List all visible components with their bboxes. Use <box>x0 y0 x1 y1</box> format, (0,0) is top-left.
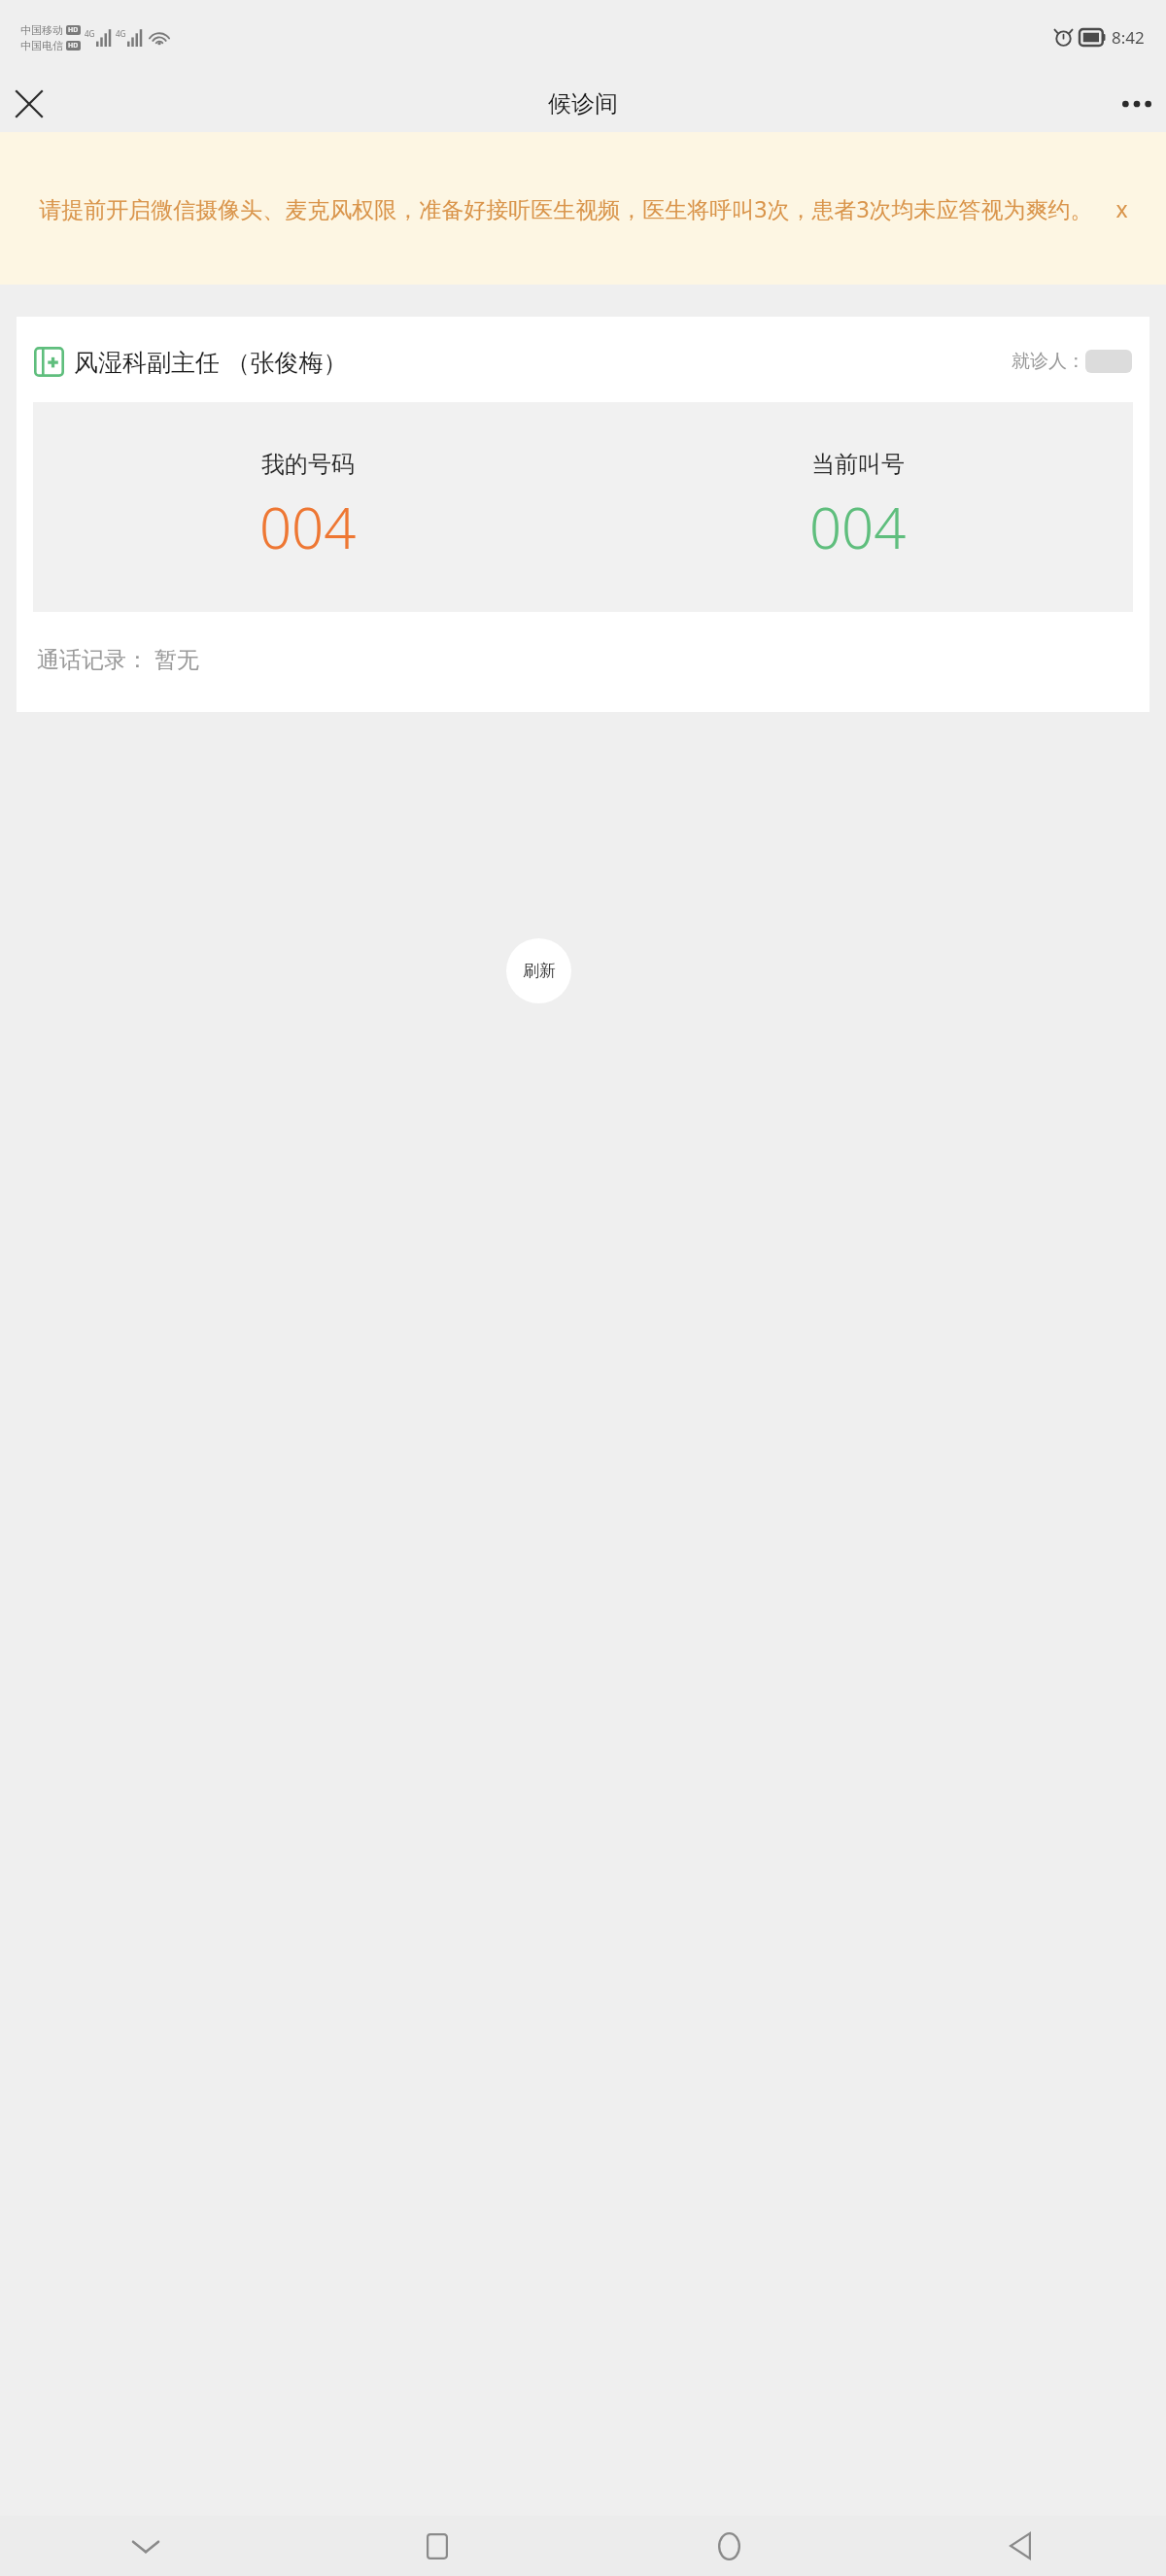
button[interactable]: 请提前开启微信摄像头、麦克风权限，准备好接听医生视频，医生将呼叫3次，患者3次均… <box>0 132 1166 285</box>
staticText: 中国电信 <box>20 39 63 52</box>
staticText: HD <box>68 25 79 35</box>
staticText: 004 <box>259 489 357 565</box>
staticText: 8:42 <box>1112 26 1145 49</box>
button[interactable]: 关闭 <box>0 75 58 132</box>
staticText: 中国移动 <box>20 23 63 37</box>
staticText: 候诊间 <box>548 89 618 119</box>
staticText: 004 <box>809 489 907 565</box>
button[interactable]: 更多 <box>1108 75 1166 132</box>
staticText: 我的号码 <box>261 450 355 479</box>
button[interactable]: 返回 <box>874 2516 1166 2576</box>
staticText: 4G <box>85 28 95 39</box>
staticText: HD <box>68 41 79 51</box>
button[interactable]: 最近任务 <box>291 2516 583 2576</box>
button[interactable]: 收起键盘 <box>0 2516 291 2576</box>
staticText: 4G <box>116 28 126 39</box>
staticText: 请提前开启微信摄像头、麦克风权限，准备好接听医生视频，医生将呼叫3次，患者3次均… <box>39 193 1128 223</box>
staticText: 当前叫号 <box>811 450 905 479</box>
button[interactable]: 刷新 <box>506 938 571 1003</box>
staticText: 风湿科副主任 （张俊梅） <box>74 345 348 378</box>
staticText: 通话记录： 暂无 <box>37 643 199 673</box>
staticText: 刷新 <box>523 961 556 981</box>
staticText: 就诊人： <box>1012 350 1085 373</box>
button[interactable]: 主页 <box>583 2516 874 2576</box>
button[interactable]: 风湿科副主任 （张俊梅） <box>17 317 1149 712</box>
